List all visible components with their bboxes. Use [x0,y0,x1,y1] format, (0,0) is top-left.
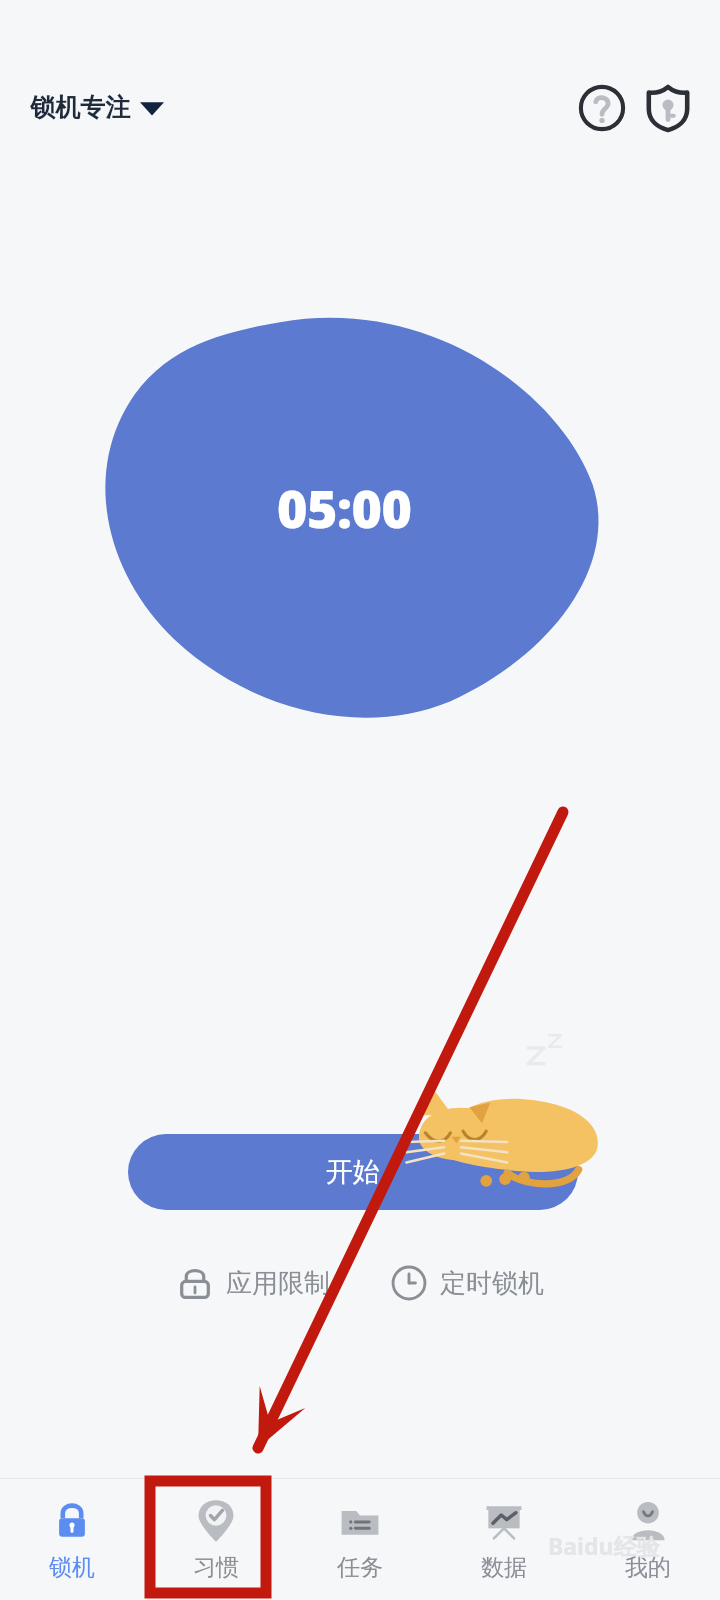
staticText: 数据 [481,1553,527,1582]
staticText: 05:00 [277,472,412,543]
button[interactable]: 习惯 [144,1479,288,1600]
button[interactable]: Security [640,80,696,136]
button[interactable]: Help [574,80,630,136]
staticText: 任务 [337,1553,383,1582]
button[interactable]: 应用限制 [170,1258,336,1308]
button[interactable]: 开始 [128,1134,578,1210]
staticText: 锁机专注 [30,92,130,123]
staticText: 习惯 [193,1553,239,1582]
staticText: 开始 [326,1155,380,1189]
button[interactable]: 数据 [432,1479,576,1600]
staticText: 我的 [625,1553,671,1582]
staticText: 锁机 [49,1553,95,1582]
button[interactable]: 我的 [576,1479,720,1600]
button[interactable]: 任务 [288,1479,432,1600]
staticText: 定时锁机 [440,1267,544,1300]
button[interactable]: 锁机 [0,1479,144,1600]
button[interactable]: 锁机专注 [28,86,166,129]
staticText: Baidu经验 [548,1530,660,1561]
button[interactable]: 05:00 [100,312,600,722]
staticText: 应用限制 [226,1267,330,1300]
button[interactable]: 定时锁机 [384,1258,550,1308]
